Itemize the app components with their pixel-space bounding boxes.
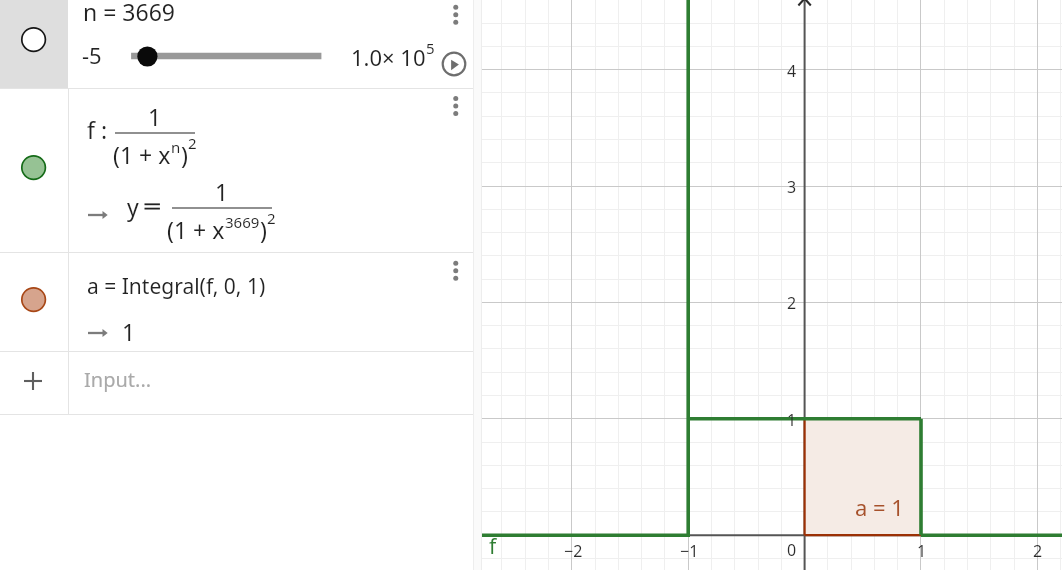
staticText: (1 + x bbox=[167, 214, 225, 245]
staticText: 4 bbox=[787, 60, 797, 82]
staticText: a = 1 bbox=[855, 492, 904, 522]
button[interactable]: More options bbox=[442, 0, 470, 32]
staticText: 1 bbox=[148, 101, 162, 132]
staticText: 2 bbox=[188, 133, 197, 153]
staticText: y bbox=[127, 191, 139, 222]
button[interactable]: Play animation bbox=[438, 48, 470, 80]
staticText: n = 3669 bbox=[83, 0, 175, 27]
staticText: −1 bbox=[680, 540, 699, 562]
button[interactable]: Input... bbox=[0, 352, 473, 414]
button[interactable]: Slider value bbox=[124, 45, 330, 69]
staticText: 2 bbox=[1033, 540, 1043, 562]
button[interactable]: n = 3669 bbox=[0, 0, 473, 88]
staticText: 1 bbox=[122, 316, 136, 347]
staticText: (1 + x bbox=[113, 139, 171, 170]
staticText: 2 bbox=[787, 292, 797, 314]
staticText: ) bbox=[181, 139, 188, 170]
staticText: n bbox=[171, 137, 181, 157]
staticText: 1 bbox=[787, 409, 797, 431]
staticText: f bbox=[489, 532, 497, 561]
staticText: 0 bbox=[787, 539, 797, 561]
staticText: 1 bbox=[917, 540, 927, 562]
staticText: -5 bbox=[82, 40, 102, 70]
button[interactable]: a = Integral(f, 0, 1) bbox=[0, 253, 473, 351]
staticText: Input... bbox=[84, 366, 152, 393]
staticText: 1.0× 10 bbox=[351, 42, 426, 72]
button[interactable]: f : bbox=[0, 89, 473, 252]
staticText: f : bbox=[87, 114, 108, 145]
staticText: −2 bbox=[564, 540, 583, 562]
button[interactable]: More options bbox=[442, 89, 470, 121]
button[interactable]: More options bbox=[442, 253, 470, 285]
staticText: a = Integral(f, 0, 1) bbox=[87, 272, 266, 301]
staticText: 3669 bbox=[225, 212, 260, 232]
staticText: 5 bbox=[426, 38, 435, 58]
staticText: ) bbox=[260, 214, 267, 245]
staticText: 2 bbox=[267, 208, 276, 228]
staticText: 3 bbox=[787, 176, 797, 198]
staticText: 1 bbox=[215, 176, 229, 207]
